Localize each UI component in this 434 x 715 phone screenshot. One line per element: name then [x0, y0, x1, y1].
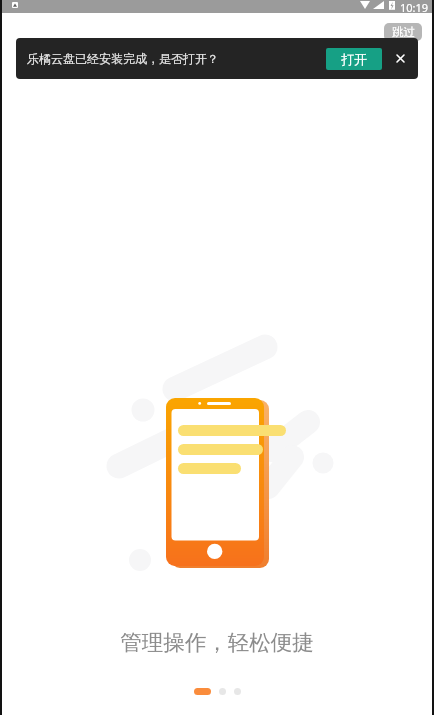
- button[interactable]: 打开: [326, 48, 382, 70]
- button[interactable]: 跳过: [384, 23, 422, 41]
- button[interactable]: Close: [382, 38, 418, 79]
- staticText: 跳过: [392, 25, 415, 39]
- staticText: 乐橘云盘已经安装完成，是否打开？: [27, 51, 326, 66]
- staticText: 管理操作，轻松便捷: [120, 629, 314, 656]
- staticText: 10:19: [400, 0, 429, 13]
- staticText: 打开: [341, 51, 367, 67]
